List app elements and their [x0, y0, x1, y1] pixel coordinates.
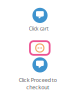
button[interactable]: Click cart [32, 8, 48, 23]
staticText: Click Proceed to checkout [18, 76, 56, 91]
button[interactable]: Proceed to checkout [32, 57, 48, 72]
staticText: Click cart [29, 25, 49, 32]
button[interactable]: Cart [29, 40, 50, 56]
